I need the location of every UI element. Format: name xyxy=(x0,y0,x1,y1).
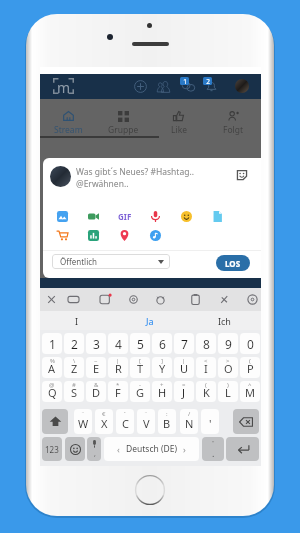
button[interactable]: # xyxy=(64,381,84,402)
button[interactable]: 9 xyxy=(218,333,238,354)
staticText: Deutsch (DE) xyxy=(126,443,177,455)
button[interactable]: 4 xyxy=(108,333,128,354)
button[interactable]: 2 xyxy=(64,333,84,354)
staticText: 123 xyxy=(45,444,59,455)
button[interactable]: Shop xyxy=(57,230,68,241)
button[interactable]: Create post xyxy=(133,79,147,93)
button[interactable]: Close xyxy=(40,288,62,310)
button[interactable]: GIF xyxy=(116,210,134,222)
button[interactable]: Shift xyxy=(42,409,68,434)
button[interactable]: Space xyxy=(104,437,199,461)
button[interactable]: ¨ xyxy=(74,409,92,434)
button[interactable]: : xyxy=(158,409,176,434)
button[interactable]: GIF xyxy=(62,288,84,310)
button[interactable]: ´ xyxy=(116,409,134,434)
button[interactable]: ¨ xyxy=(137,409,155,434)
button[interactable]: @ xyxy=(42,381,62,402)
staticText: ~ xyxy=(94,357,98,365)
button[interactable]: Home xyxy=(53,78,74,94)
button[interactable]: Pinned xyxy=(213,288,235,310)
button[interactable]: * xyxy=(108,381,128,402)
button[interactable]: 1 xyxy=(42,333,62,354)
staticText: Gruppe xyxy=(108,124,139,136)
button[interactable]: Backspace xyxy=(233,409,259,434)
staticText: O xyxy=(224,361,233,376)
button[interactable]: Return xyxy=(226,437,259,461)
button[interactable]: Messages xyxy=(181,79,195,93)
staticText: Q xyxy=(48,385,57,400)
button[interactable]: Clipboard xyxy=(184,288,206,310)
button[interactable]: / xyxy=(180,409,198,434)
button[interactable]: & xyxy=(86,381,106,402)
staticText: > xyxy=(226,357,230,365)
button[interactable]: 5 xyxy=(130,333,150,354)
button[interactable]: Period xyxy=(202,437,224,461)
button[interactable]: 7 xyxy=(174,333,194,354)
button[interactable]: Sticker xyxy=(236,169,248,181)
button[interactable]: - xyxy=(130,381,150,402)
button[interactable]: Ich xyxy=(187,311,261,330)
button[interactable]: LOS xyxy=(216,255,250,271)
button[interactable]: Emoji xyxy=(181,211,192,222)
button[interactable]: ~ xyxy=(86,357,106,378)
button[interactable]: Memoji xyxy=(94,288,116,310)
button[interactable]: | xyxy=(108,357,128,378)
button[interactable]: Voice xyxy=(150,211,161,222)
button[interactable]: \ xyxy=(64,357,84,378)
staticText: GIF xyxy=(118,211,132,222)
staticText: : xyxy=(166,410,168,418)
staticText: X xyxy=(101,416,108,431)
button[interactable]: Animoji xyxy=(149,288,171,310)
button[interactable]: 6 xyxy=(152,333,172,354)
button[interactable]: 8 xyxy=(196,333,216,354)
button[interactable]: Stream xyxy=(40,99,96,137)
button[interactable]: < xyxy=(196,357,216,378)
button[interactable]: ] xyxy=(152,357,172,378)
button[interactable]: € xyxy=(95,409,113,434)
button[interactable]: Settings xyxy=(122,288,144,310)
staticText: ´ xyxy=(124,410,126,418)
button[interactable]: ) xyxy=(218,381,238,402)
button[interactable]: Profile picture xyxy=(50,166,71,187)
button[interactable]: Öffentlich xyxy=(52,254,170,269)
button[interactable]: ' xyxy=(201,409,219,434)
staticText: 1 xyxy=(49,336,56,352)
staticText: I xyxy=(75,315,79,327)
button[interactable]: ( xyxy=(240,357,260,378)
button[interactable]: Friends xyxy=(156,79,170,93)
button[interactable]: ^ xyxy=(240,381,260,402)
button[interactable]: Profile xyxy=(235,79,249,93)
staticText: ) xyxy=(227,381,229,389)
button[interactable]: 3 xyxy=(86,333,106,354)
button[interactable]: Gruppe xyxy=(96,99,151,137)
staticText: K xyxy=(203,385,210,400)
button[interactable]: 0 xyxy=(240,333,260,354)
button[interactable]: % xyxy=(42,357,62,378)
button[interactable]: + xyxy=(152,381,172,402)
button[interactable]: Music xyxy=(150,230,161,241)
staticText: 8 xyxy=(203,336,210,352)
button[interactable]: Notifications xyxy=(204,79,218,93)
button[interactable]: Folgt xyxy=(206,99,261,137)
staticText: ' xyxy=(209,416,212,431)
button[interactable]: I xyxy=(40,311,113,330)
staticText: Öffentlich xyxy=(60,256,98,267)
button[interactable]: > xyxy=(218,357,238,378)
button[interactable]: Ja xyxy=(113,311,187,330)
button[interactable]: Numbers xyxy=(42,437,62,461)
staticText: ” xyxy=(212,439,215,447)
staticText: @ xyxy=(49,381,55,389)
button[interactable]: | xyxy=(174,357,194,378)
button[interactable]: Like xyxy=(151,99,206,137)
button[interactable]: Video xyxy=(88,211,99,222)
button[interactable]: ( xyxy=(196,381,216,402)
button[interactable]: Dictation xyxy=(87,437,101,461)
button[interactable]: Emoji xyxy=(65,437,85,461)
button[interactable]: Location xyxy=(241,288,263,310)
button[interactable]: File xyxy=(212,211,223,222)
button[interactable]: Photo xyxy=(57,211,68,222)
button[interactable]: = xyxy=(174,381,194,402)
button[interactable]: Location xyxy=(119,230,130,241)
button[interactable]: [ xyxy=(130,357,150,378)
button[interactable]: Poll xyxy=(88,230,99,241)
